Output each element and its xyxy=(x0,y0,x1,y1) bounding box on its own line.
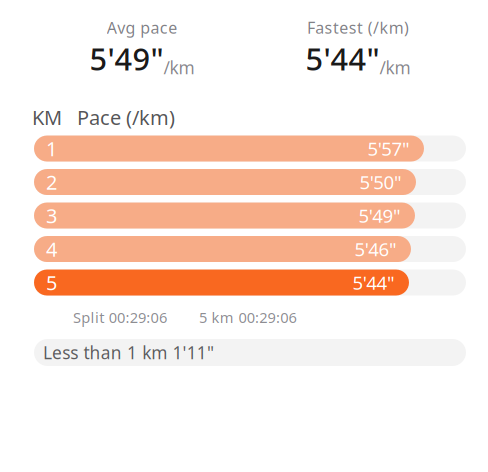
staticText: 4 xyxy=(46,236,57,262)
staticText: 5'46" xyxy=(354,237,397,261)
staticText: 5 km 00:29:06 xyxy=(199,307,296,327)
staticText: 2 xyxy=(46,169,57,195)
staticText: /km xyxy=(163,56,194,79)
staticText: /km xyxy=(379,56,410,79)
staticText: 5'44" xyxy=(305,38,379,79)
staticText: Pace (/km) xyxy=(77,104,175,131)
button[interactable]: Less than 1 km 1'11" xyxy=(34,339,466,366)
staticText: Less than 1 km 1'11" xyxy=(43,341,214,364)
staticText: 5'44" xyxy=(352,270,395,295)
button[interactable]: 5 xyxy=(34,269,466,295)
staticText: 5'57" xyxy=(367,136,410,161)
button[interactable]: 3 xyxy=(34,202,466,228)
staticText: 5'49" xyxy=(89,38,163,79)
staticText: Avg pace xyxy=(107,17,177,38)
staticText: KM xyxy=(32,104,62,131)
staticText: 3 xyxy=(46,202,57,229)
staticText: Split 00:29:06 xyxy=(73,307,167,327)
button[interactable]: 4 xyxy=(34,236,466,262)
button[interactable]: 2 xyxy=(34,169,466,195)
staticText: 5'50" xyxy=(359,170,402,194)
staticText: 5'49" xyxy=(358,203,401,228)
staticText: 1 xyxy=(46,135,57,162)
button[interactable]: 1 xyxy=(34,135,466,161)
staticText: Fastest (/km) xyxy=(307,17,409,38)
staticText: 5 xyxy=(46,269,57,296)
